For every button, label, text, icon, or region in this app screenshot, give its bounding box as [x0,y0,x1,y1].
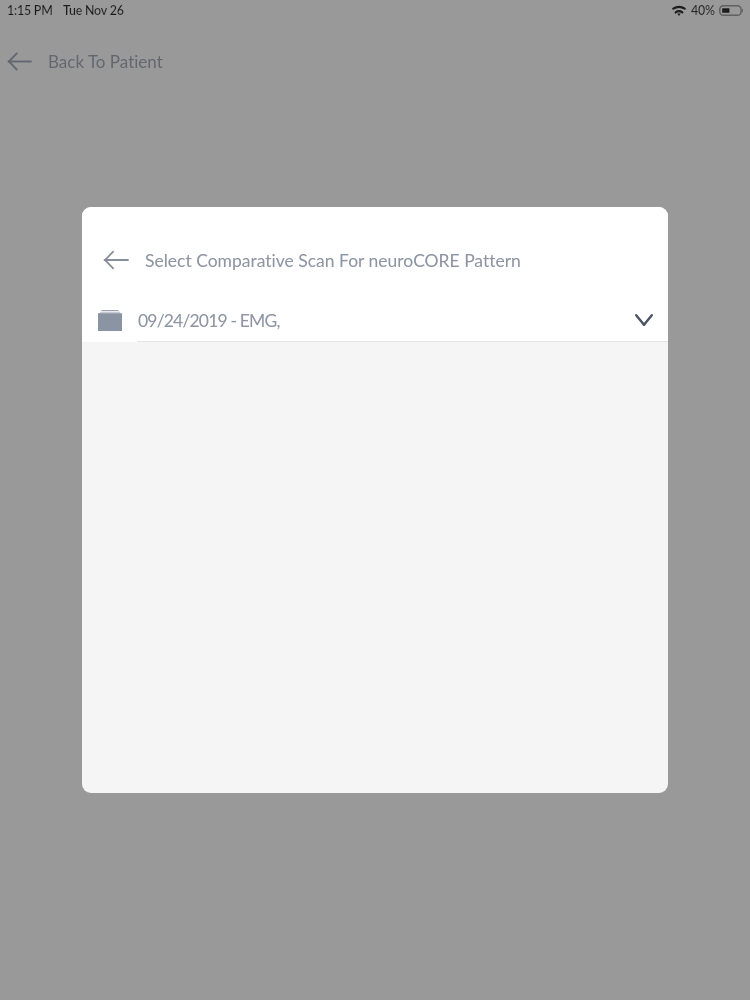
staticText: 09/24/2019 - EMG, [138,310,280,331]
staticText: Tue Nov 26 [63,3,124,18]
button[interactable]: 09/24/2019 - EMG, [82,299,668,341]
button[interactable]: Back To Patient [7,42,163,80]
staticText: Select Comparative Scan For neuroCORE Pa… [145,250,521,271]
button[interactable]: Dismiss dialog [0,0,750,1000]
staticText: 1:15 PM [7,3,53,18]
other: Expand scan list [629,305,659,335]
button[interactable]: Back [104,248,128,272]
staticText: 40% [691,3,715,18]
staticText: Back To Patient [48,51,163,71]
